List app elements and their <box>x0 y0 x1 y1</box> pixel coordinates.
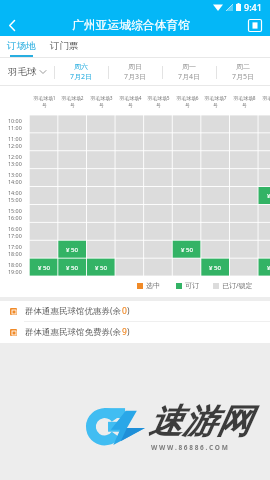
button[interactable] <box>30 223 58 240</box>
button[interactable] <box>173 259 201 276</box>
button[interactable]: ¥ 50 <box>259 259 270 276</box>
button[interactable] <box>230 151 258 168</box>
button[interactable]: 群体通惠民球馆免费券 <box>0 322 270 342</box>
button[interactable] <box>87 133 115 150</box>
button[interactable] <box>116 259 144 276</box>
button[interactable] <box>87 151 115 168</box>
button[interactable]: ¥ 50 <box>201 259 229 276</box>
button[interactable] <box>116 241 144 258</box>
button[interactable] <box>116 115 144 132</box>
button[interactable] <box>144 115 172 132</box>
button[interactable] <box>230 133 258 150</box>
button[interactable]: ¥ 50 <box>58 259 86 276</box>
button[interactable] <box>30 133 58 150</box>
button[interactable]: 周二 <box>216 58 270 86</box>
staticText: 14:00 <box>8 178 22 185</box>
button[interactable] <box>116 133 144 150</box>
button[interactable] <box>173 151 201 168</box>
staticText: 16:00 <box>8 225 22 232</box>
button[interactable] <box>173 223 201 240</box>
button[interactable] <box>230 115 258 132</box>
button[interactable]: ¥ 50 <box>58 241 86 258</box>
button[interactable] <box>201 115 229 132</box>
button[interactable] <box>230 223 258 240</box>
staticText: 羽毛球场3号 <box>89 95 114 108</box>
staticText: 12:00 <box>8 153 22 160</box>
button[interactable] <box>30 241 58 258</box>
button[interactable] <box>87 223 115 240</box>
button[interactable] <box>116 205 144 222</box>
button[interactable]: 周一 <box>162 58 216 86</box>
staticText: 16:00 <box>8 214 22 221</box>
button[interactable]: 周六 <box>54 58 108 86</box>
button[interactable]: 订门票 <box>43 36 86 58</box>
button[interactable]: 羽毛球 <box>0 58 54 86</box>
button[interactable]: 群体通惠民球馆优惠券 <box>0 301 270 321</box>
button[interactable] <box>30 187 58 204</box>
button[interactable] <box>116 169 144 186</box>
button[interactable] <box>173 205 201 222</box>
button[interactable]: 订场地 <box>0 36 43 58</box>
button[interactable] <box>144 259 172 276</box>
button[interactable] <box>173 115 201 132</box>
button[interactable] <box>259 115 270 132</box>
button[interactable] <box>116 151 144 168</box>
button[interactable] <box>30 151 58 168</box>
button[interactable] <box>116 187 144 204</box>
button[interactable] <box>30 115 58 132</box>
button[interactable]: 周日 <box>108 58 162 86</box>
button[interactable] <box>173 187 201 204</box>
button[interactable]: More options <box>240 14 270 36</box>
button[interactable] <box>30 205 58 222</box>
button[interactable] <box>58 115 86 132</box>
button[interactable] <box>116 223 144 240</box>
button[interactable]: ¥ 50 <box>87 259 115 276</box>
button[interactable] <box>230 259 258 276</box>
button[interactable] <box>30 169 58 186</box>
button[interactable] <box>87 241 115 258</box>
button[interactable]: Back <box>0 14 24 36</box>
staticText: 可订 <box>185 281 199 290</box>
button[interactable]: ¥ 50 <box>259 187 270 204</box>
staticText: 17:00 <box>8 243 22 250</box>
button[interactable]: ¥ 50 <box>30 259 58 276</box>
button[interactable]: ¥ 50 <box>173 241 201 258</box>
button[interactable] <box>230 241 258 258</box>
button[interactable] <box>173 133 201 150</box>
staticText: 15:00 <box>8 196 22 203</box>
button[interactable] <box>87 115 115 132</box>
button[interactable] <box>173 169 201 186</box>
